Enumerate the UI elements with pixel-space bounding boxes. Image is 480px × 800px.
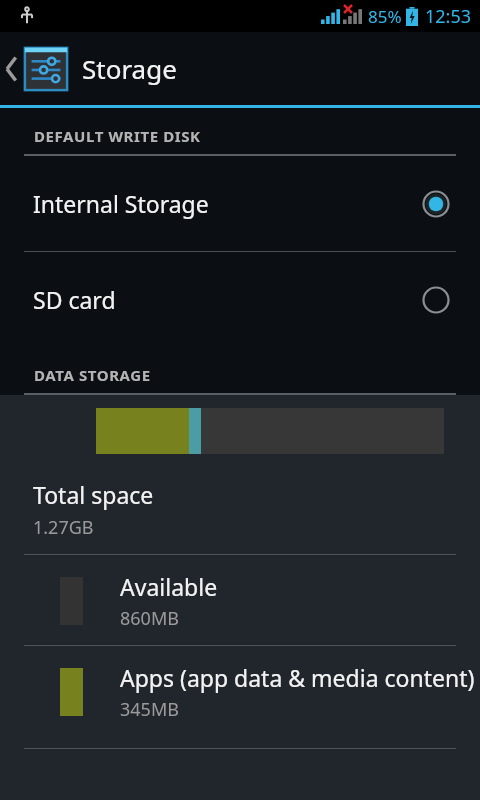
staticText: 1.27GB (33, 515, 94, 540)
staticText: Apps (app data & media content) (120, 662, 475, 693)
staticText: SD card (33, 284, 422, 315)
staticText: Storage (82, 51, 177, 86)
staticText: Total space (33, 479, 154, 510)
button[interactable]: Internal Storage (0, 156, 480, 251)
button[interactable]: Apps (app data & media content) (0, 646, 480, 736)
staticText: Internal Storage (33, 188, 422, 219)
staticText: 860MB (120, 606, 179, 631)
staticText: DEFAULT WRITE DISK (34, 126, 201, 146)
staticText: 345MB (120, 697, 179, 722)
button[interactable]: Total space (0, 467, 480, 554)
staticText: 12:53 (425, 4, 472, 29)
button[interactable]: Back to settings (0, 32, 480, 105)
staticText: DATA STORAGE (34, 365, 151, 385)
staticText: 85% (368, 5, 402, 28)
button[interactable]: Available (0, 555, 480, 645)
staticText: Available (120, 571, 218, 602)
button[interactable]: SD card (0, 252, 480, 347)
